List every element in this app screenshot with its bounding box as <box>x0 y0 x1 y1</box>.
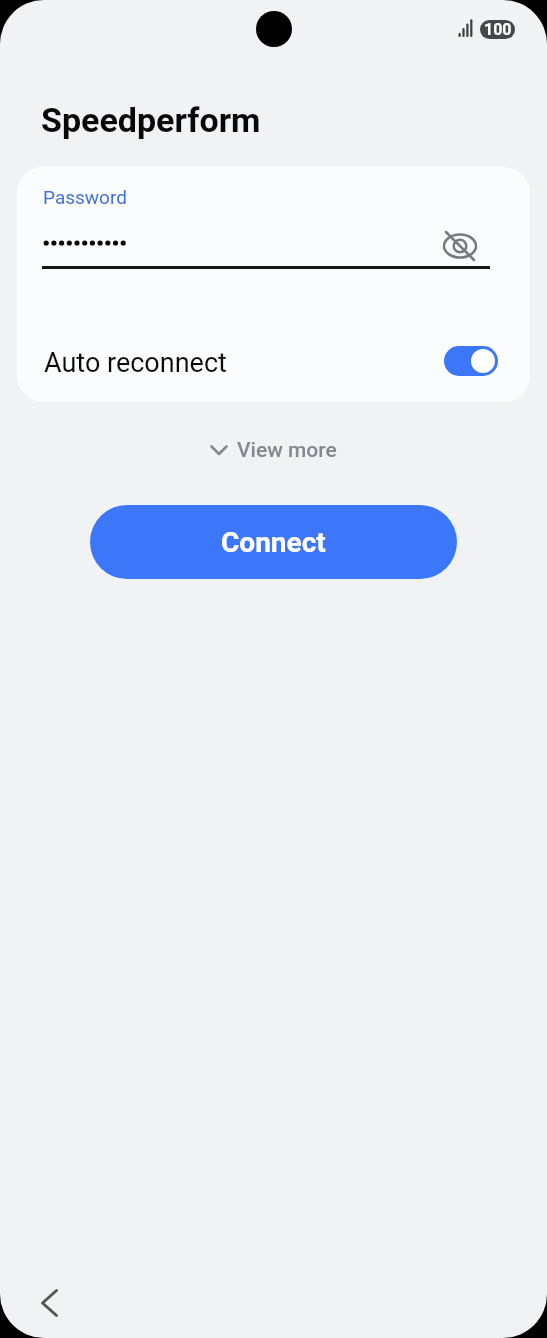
button[interactable]: Connect <box>90 505 457 579</box>
staticText: Password <box>43 186 127 208</box>
staticText: Auto reconnect <box>44 347 227 379</box>
button[interactable] <box>444 346 498 376</box>
button[interactable] <box>23 1280 79 1325</box>
button[interactable] <box>437 223 482 268</box>
staticText: Connect <box>221 526 326 559</box>
button[interactable]: View more <box>0 433 547 467</box>
staticText: 100 <box>484 20 512 39</box>
staticText: Speedperform <box>41 100 261 140</box>
staticText: View more <box>237 438 337 463</box>
